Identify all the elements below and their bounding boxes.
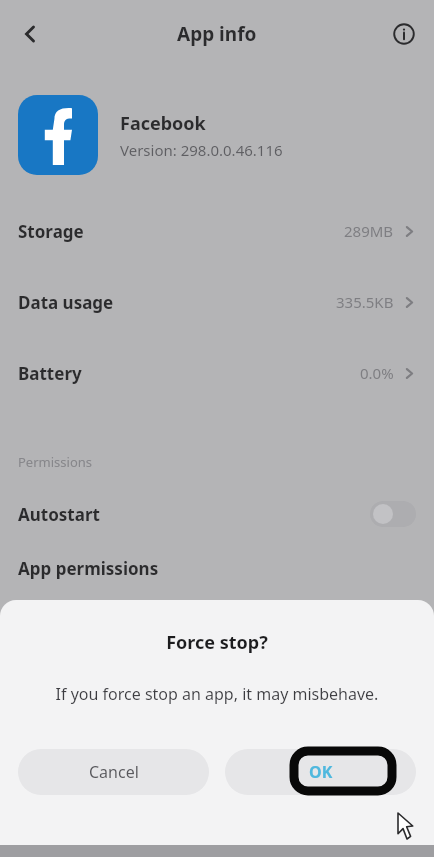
staticText: Force stop? (0, 630, 434, 655)
button[interactable]: Storage (0, 211, 434, 251)
staticText: 0.0% (360, 363, 394, 383)
button[interactable]: Autostart (0, 493, 434, 535)
staticText: Storage (18, 220, 84, 243)
staticText: Permissions (18, 453, 93, 471)
staticText: OK (309, 761, 333, 783)
button[interactable]: Data usage (0, 282, 434, 322)
staticText: App info (177, 21, 257, 47)
button[interactable]: App details info (382, 12, 426, 56)
button[interactable]: Cancel (18, 749, 209, 795)
staticText: Cancel (89, 761, 139, 783)
staticText: Version: 298.0.0.46.116 (120, 140, 283, 160)
staticText: If you force stop an app, it may misbeha… (14, 683, 420, 705)
staticText: 335.5KB (336, 292, 394, 312)
button[interactable]: Back (6, 10, 54, 58)
staticText: Facebook (120, 111, 206, 136)
button[interactable]: OK (225, 749, 416, 795)
button[interactable]: Battery (0, 353, 434, 393)
staticText: Battery (18, 362, 82, 385)
staticText: 289MB (344, 221, 394, 241)
staticText: Data usage (18, 291, 114, 314)
staticText: Autostart (18, 503, 100, 526)
staticText: App permissions (18, 557, 159, 580)
